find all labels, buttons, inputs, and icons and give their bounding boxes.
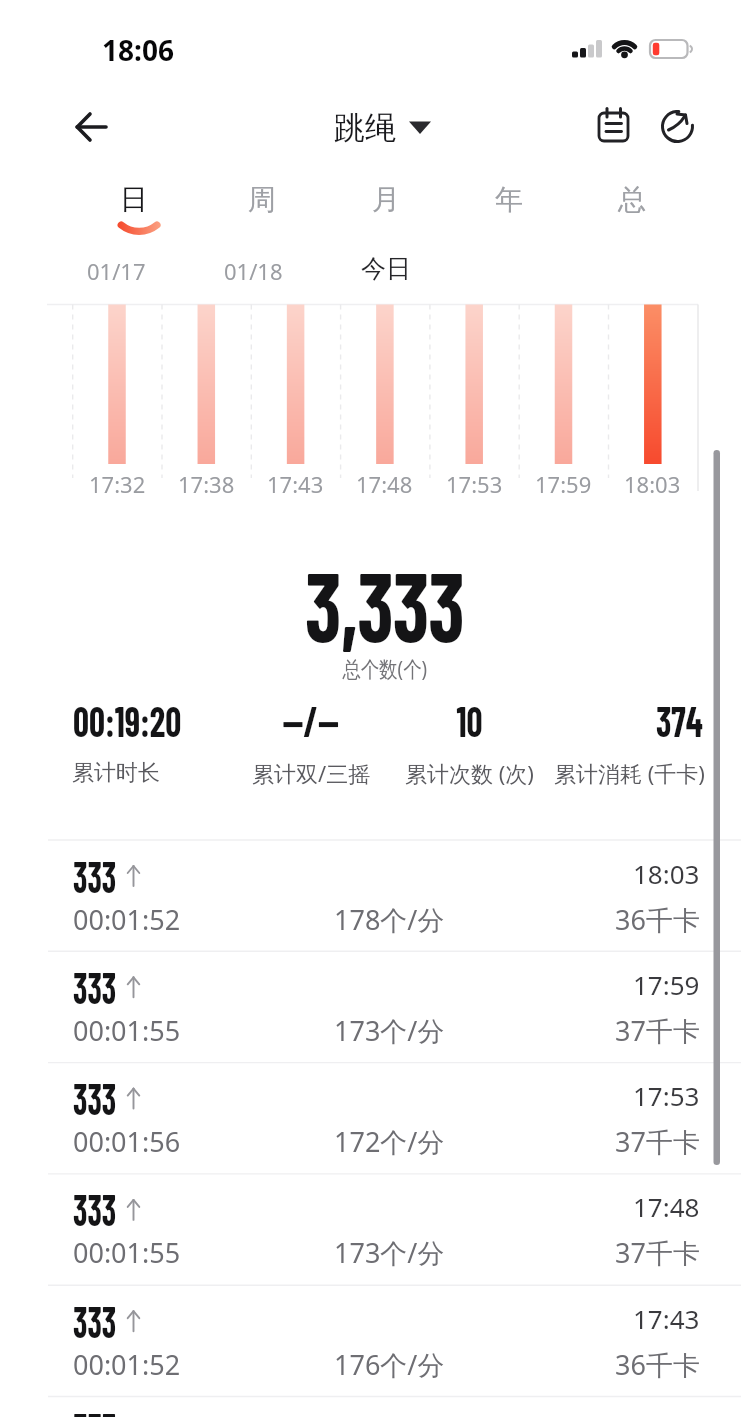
button[interactable]: 日 [89,174,179,224]
staticText: 172个/分 [334,1123,445,1160]
staticText: 17:53 [633,1078,700,1113]
button[interactable]: 总 [587,174,677,224]
staticText: 18:06 [102,31,174,69]
staticText: 333 [73,960,116,1010]
staticText: 333 [73,1071,116,1121]
staticText: 178个/分 [334,901,445,938]
staticText: 日 [120,182,148,217]
staticText: 10 [456,695,482,745]
staticText: 37千卡 [615,1012,700,1049]
staticText: 00:01:56 [73,1123,181,1160]
staticText: 333 [73,849,116,899]
staticText: 总个数(个) [342,653,428,683]
staticText: --/-- [282,695,339,745]
button[interactable] [48,1062,741,1173]
button[interactable]: 月 [341,174,431,224]
button[interactable]: 01/18 [193,251,313,291]
staticText: 累计消耗 (千卡) [554,758,705,788]
staticText: 17:59 [535,469,592,499]
staticText: 月 [372,182,400,217]
staticText: 333 [73,1182,116,1232]
button[interactable] [62,102,118,152]
staticText: 累计双/三摇 [252,758,371,788]
staticText: 17:43 [267,469,324,499]
staticText: 17:38 [178,469,235,499]
staticText: 00:19:20 [73,695,181,745]
button[interactable]: 年 [464,174,554,224]
staticText: 17:48 [356,469,413,499]
staticText: 333 [73,1294,116,1344]
staticText: 17:48 [633,1189,700,1224]
button[interactable] [48,840,741,951]
staticText: 01/17 [87,256,146,286]
staticText: 17:53 [446,469,503,499]
staticText: 333 [73,1401,116,1417]
staticText: 总 [618,182,646,217]
button[interactable] [48,1285,741,1396]
staticText: 17:43 [633,1301,700,1336]
staticText: 36千卡 [615,1346,700,1383]
staticText: 17:59 [633,967,700,1002]
staticText: 3,333 [305,545,464,661]
staticText: 173个/分 [334,1012,445,1049]
button[interactable]: 今日 [326,248,446,288]
staticText: 374 [656,695,703,745]
staticText: 00:01:52 [73,901,181,938]
staticText: 36千卡 [615,901,700,938]
button[interactable] [652,102,704,152]
staticText: 37千卡 [615,1234,700,1271]
staticText: 18:03 [624,469,681,499]
staticText: 累计次数 (次) [405,758,534,788]
staticText: 176个/分 [334,1346,445,1383]
staticText: 跳绳 [334,108,396,147]
staticText: 00:01:55 [73,1012,181,1049]
staticText: 01/18 [224,256,283,286]
staticText: 00:01:52 [73,1346,181,1383]
staticText: 17:32 [89,469,146,499]
staticText: 00:01:55 [73,1234,181,1271]
staticText: 37千卡 [615,1123,700,1160]
staticText: 今日 [361,253,411,284]
button[interactable] [48,951,741,1062]
button[interactable] [588,102,640,152]
button[interactable] [48,1396,741,1417]
staticText: 周 [248,182,276,217]
button[interactable]: 01/17 [56,251,176,291]
staticText: 累计时长 [72,759,160,787]
button[interactable] [330,102,440,152]
staticText: 18:03 [633,856,700,891]
staticText: 年 [495,182,523,217]
button[interactable]: 周 [217,174,307,224]
button[interactable] [48,1173,741,1284]
staticText: 173个/分 [334,1234,445,1271]
